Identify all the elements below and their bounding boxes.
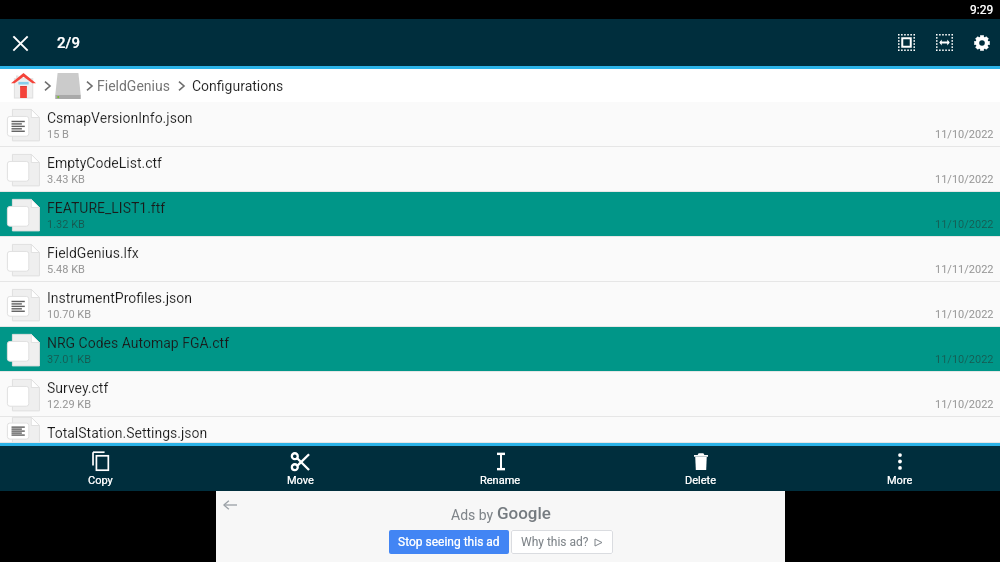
staticText: 37.01 KB (47, 353, 92, 366)
button[interactable]: More (800, 446, 1000, 491)
button[interactable]: Survey.ctf (0, 372, 1000, 417)
button[interactable]: FieldGenius (92, 69, 175, 102)
staticText: 9:29 (970, 3, 994, 17)
button[interactable]: Back (220, 495, 240, 515)
button[interactable]: Delete (600, 446, 800, 491)
button[interactable]: Invert selection (925, 19, 963, 66)
button[interactable]: FEATURE_LIST1.ftf (0, 192, 1000, 237)
staticText: Rename (480, 474, 521, 487)
button[interactable]: Configurations (187, 69, 289, 102)
staticText: Stop seeing this ad (398, 535, 500, 549)
staticText: 15 B (47, 128, 69, 141)
staticText: Ads by (451, 507, 497, 523)
button[interactable]: Stop seeing this ad (389, 530, 509, 554)
staticText: 11/10/2022 (935, 308, 994, 321)
staticText: 11/10/2022 (935, 128, 994, 141)
button[interactable]: Close selection (0, 23, 40, 63)
button[interactable]: Internal storage (54, 72, 81, 99)
button[interactable]: Rename (400, 446, 600, 491)
staticText: 5.48 KB (47, 263, 85, 276)
staticText: FEATURE_LIST1.ftf (47, 200, 166, 216)
staticText: Delete (685, 474, 716, 487)
staticText: NRG Codes Automap FGA.ctf (47, 335, 230, 351)
staticText: Copy (88, 474, 113, 487)
button[interactable]: FieldGenius.lfx (0, 237, 1000, 282)
button[interactable]: NRG Codes Automap FGA.ctf (0, 327, 1000, 372)
button[interactable]: EmptyCodeList.ctf (0, 147, 1000, 192)
button[interactable]: 2/9 (57, 34, 80, 52)
staticText: Configurations (192, 78, 284, 94)
staticText: 11/10/2022 (935, 398, 994, 411)
staticText: 11/11/2022 (935, 263, 994, 276)
staticText: 11/10/2022 (935, 173, 994, 186)
button[interactable]: Copy (0, 446, 200, 491)
staticText: 10.70 KB (47, 308, 92, 321)
staticText: InstrumentProfiles.json (47, 290, 193, 306)
staticText: More (887, 474, 913, 487)
staticText: Survey.ctf (47, 380, 109, 396)
button[interactable]: Home (9, 71, 38, 100)
staticText: Google (497, 503, 551, 523)
staticText: EmptyCodeList.ctf (47, 155, 162, 171)
staticText: Why this ad? (521, 535, 589, 549)
staticText: Move (287, 474, 314, 487)
staticText: 1.32 KB (47, 218, 85, 231)
button[interactable]: InstrumentProfiles.json (0, 282, 1000, 327)
staticText: 12.29 KB (47, 398, 92, 411)
staticText: TotalStation.Settings.json (47, 425, 208, 441)
staticText: CsmapVersionInfo.json (47, 110, 193, 126)
staticText: 3.43 KB (47, 173, 85, 186)
button[interactable]: CsmapVersionInfo.json (0, 102, 1000, 147)
button[interactable]: Settings (963, 19, 1000, 66)
staticText: FieldGenius.lfx (47, 245, 139, 261)
staticText: FieldGenius (97, 78, 170, 94)
staticText: 11/10/2022 (935, 218, 994, 231)
button[interactable]: Select all (887, 19, 925, 66)
button[interactable]: Why this ad? (511, 530, 613, 554)
button[interactable]: Move (200, 446, 400, 491)
staticText: 11/10/2022 (935, 353, 994, 366)
button[interactable]: TotalStation.Settings.json (0, 417, 1000, 443)
